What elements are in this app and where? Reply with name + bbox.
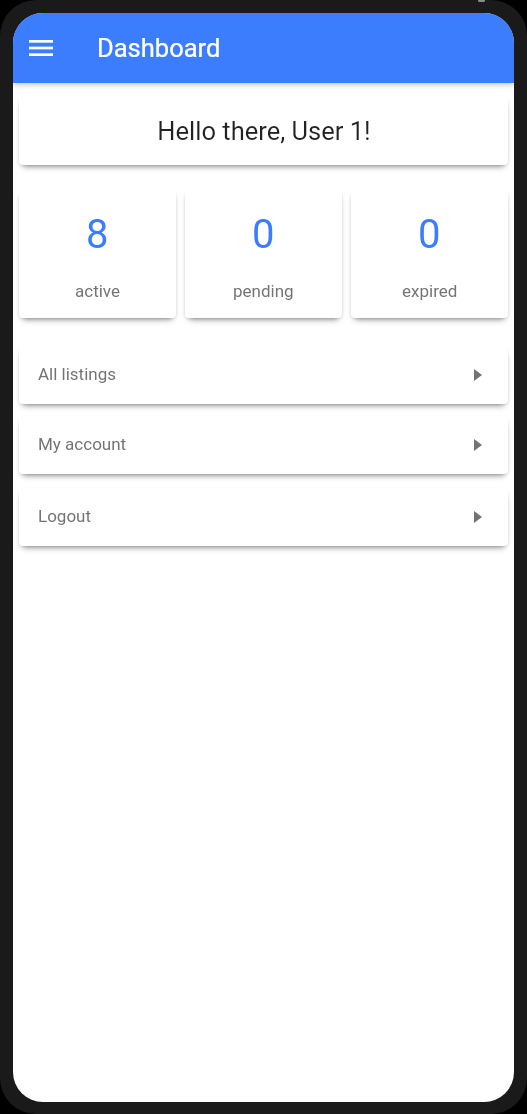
- button[interactable]: 0: [351, 189, 508, 318]
- button[interactable]: Logout: [19, 488, 508, 546]
- staticText: active: [75, 281, 120, 301]
- button[interactable]: Open navigation drawer: [19, 26, 63, 70]
- staticText: pending: [233, 281, 294, 301]
- staticText: All listings: [38, 364, 117, 384]
- button[interactable]: 0: [185, 189, 342, 318]
- staticText: 8: [86, 211, 109, 258]
- button[interactable]: My account: [19, 416, 508, 474]
- staticText: Logout: [38, 506, 92, 526]
- staticText: expired: [402, 281, 458, 301]
- staticText: 0: [418, 211, 441, 258]
- staticText: My account: [38, 434, 127, 454]
- staticText: Dashboard: [97, 33, 221, 63]
- staticText: 0: [252, 211, 275, 258]
- staticText: Hello there, User 1!: [157, 116, 371, 146]
- button[interactable]: All listings: [19, 346, 508, 404]
- button[interactable]: 8: [19, 189, 176, 318]
